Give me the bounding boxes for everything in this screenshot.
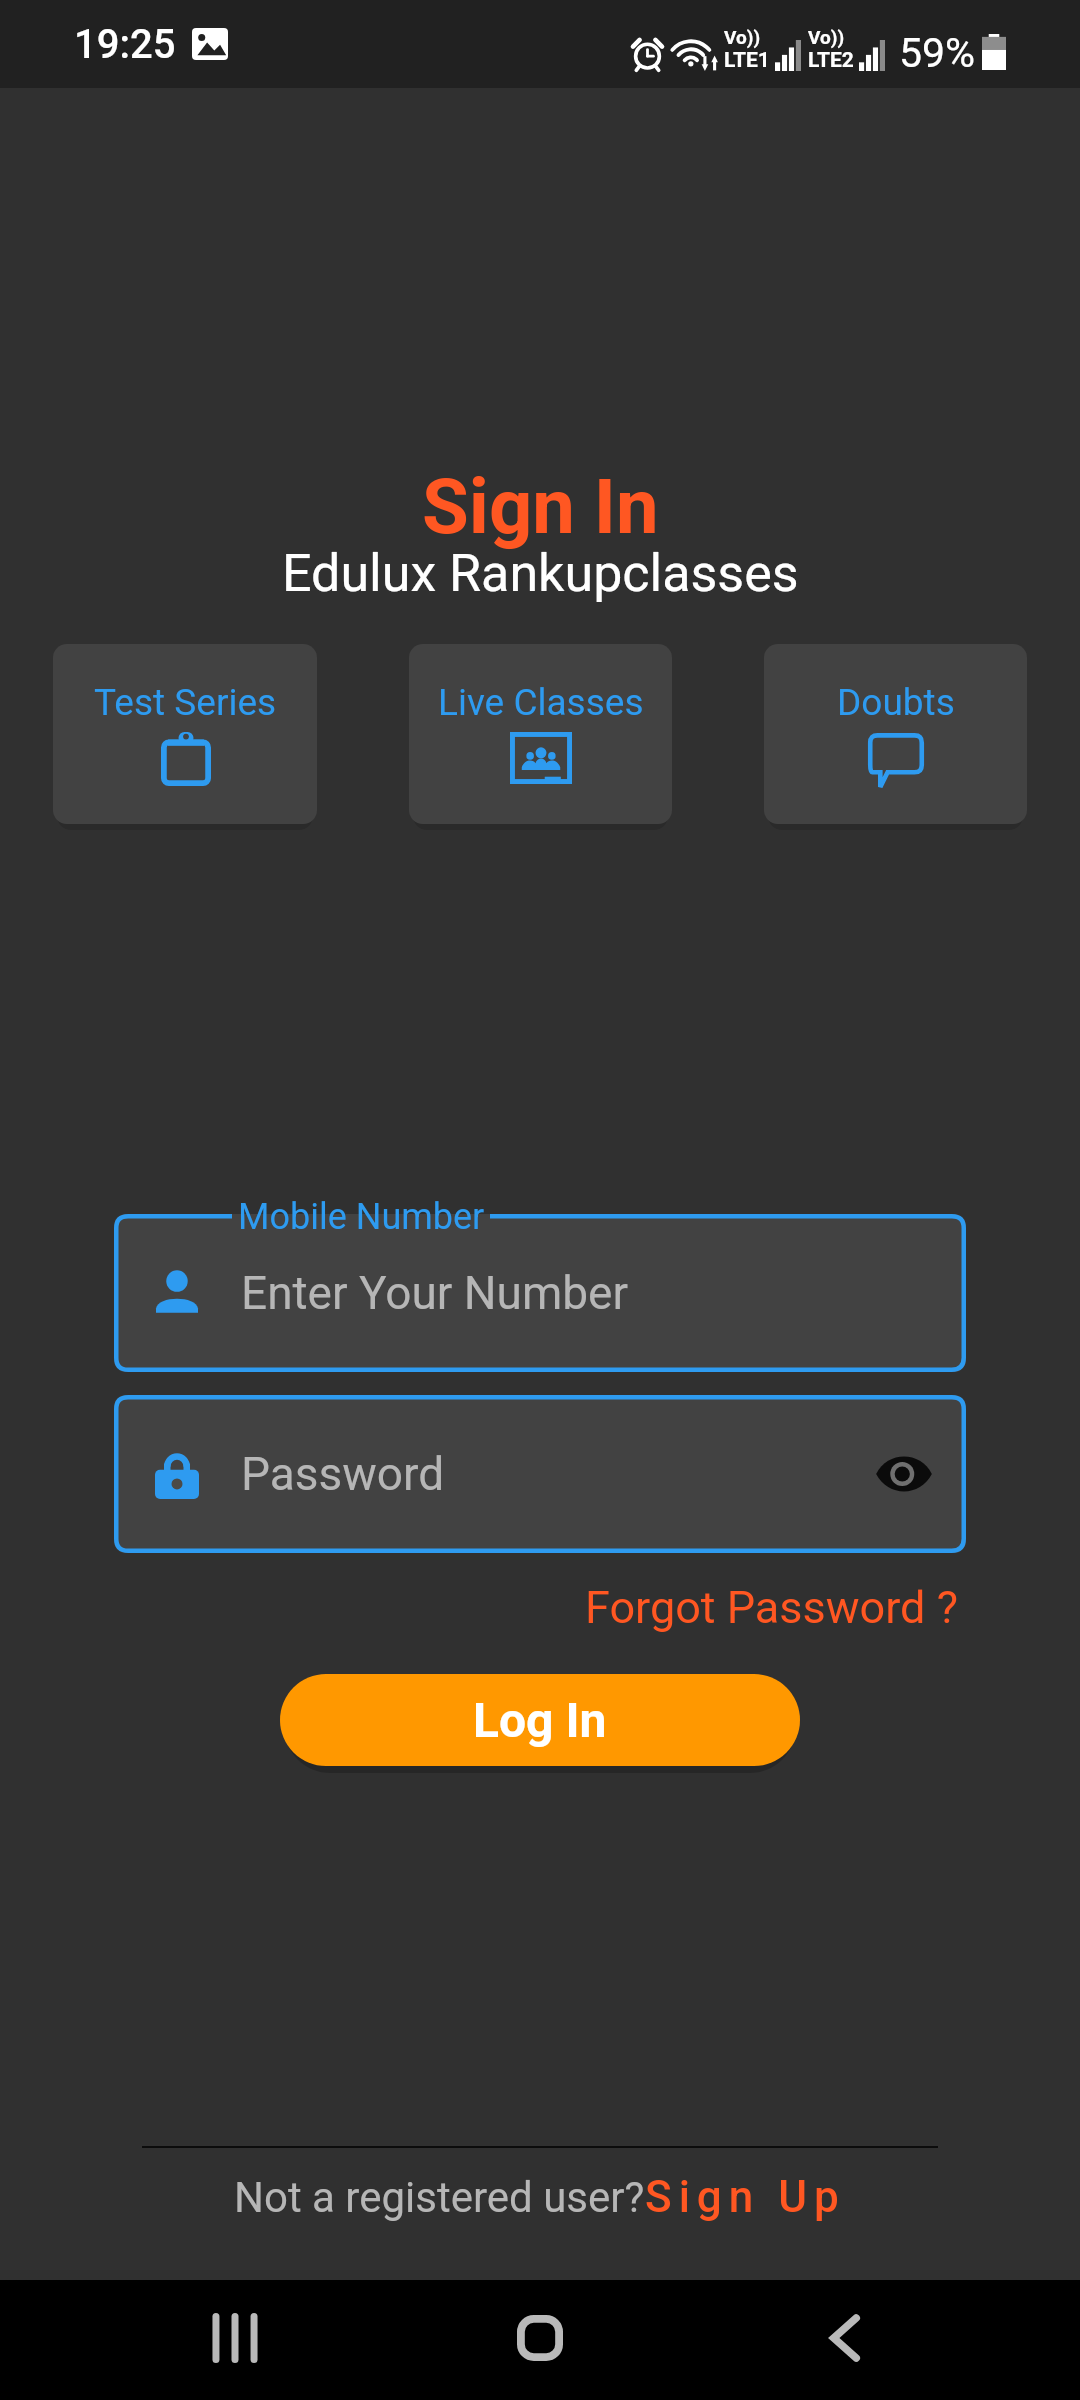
staticText: Mobile Number xyxy=(238,1196,485,1238)
button[interactable]: Sign Up xyxy=(645,2171,846,2223)
staticText: Enter Your Number xyxy=(241,1266,629,1320)
staticText: Doubts xyxy=(837,681,955,724)
button[interactable]: Live Classes xyxy=(409,644,672,824)
staticText: 59% xyxy=(899,29,976,77)
staticText: LTE1 xyxy=(724,48,770,73)
staticText: Password xyxy=(241,1447,445,1501)
button[interactable]: Log In xyxy=(280,1674,800,1766)
button[interactable]: Home xyxy=(470,2280,610,2400)
staticText: Vo)) xyxy=(808,26,845,48)
staticText: 19:25 xyxy=(74,21,176,68)
staticText: Vo)) xyxy=(724,26,761,48)
staticText: Log In xyxy=(473,1692,607,1748)
button[interactable]: Show password xyxy=(875,1454,933,1494)
staticText: Not a registered user? xyxy=(234,2173,645,2222)
button[interactable]: Forgot Password ? xyxy=(585,1581,958,1634)
button[interactable]: Password xyxy=(114,1395,966,1553)
button[interactable]: Back xyxy=(775,2280,915,2400)
staticText: Sign In xyxy=(422,462,659,551)
staticText: Edulux Rankupclasses xyxy=(282,543,799,604)
staticText: Test Series xyxy=(94,681,277,724)
button[interactable]: Doubts xyxy=(764,644,1027,824)
staticText: LTE2 xyxy=(808,48,854,73)
button[interactable]: Test Series xyxy=(53,644,317,824)
button[interactable]: Enter Your Number xyxy=(114,1214,966,1372)
button[interactable]: Recent apps xyxy=(165,2280,305,2400)
staticText: Live Classes xyxy=(438,681,644,724)
